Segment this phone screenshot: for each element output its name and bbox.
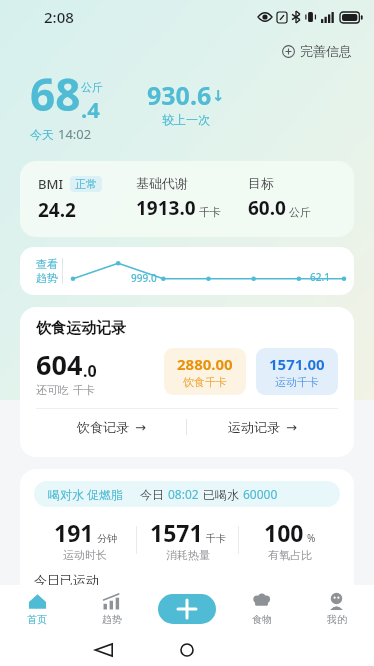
- staticText: 999.0: [131, 271, 157, 285]
- staticText: 千卡: [73, 383, 95, 397]
- staticText: 跑步上楼: [110, 618, 150, 631]
- button[interactable]: 背包步行: [34, 595, 92, 637]
- button[interactable]: 1571.00: [256, 348, 338, 395]
- staticText: 运动记录: [228, 419, 280, 435]
- staticText: 14:02: [58, 125, 92, 143]
- staticText: .4: [81, 94, 100, 124]
- staticText: 191: [54, 517, 94, 548]
- staticText: →: [286, 420, 297, 435]
- button[interactable]: 首页: [0, 585, 74, 633]
- staticText: 开始运动: [215, 607, 275, 626]
- staticText: 今日已运动: [34, 572, 99, 588]
- staticText: 趋势: [36, 271, 58, 285]
- staticText: 基础代谢: [136, 175, 188, 191]
- staticText: 千卡: [199, 205, 221, 219]
- button[interactable]: 查看: [20, 247, 354, 295]
- staticText: ↓: [212, 87, 225, 104]
- staticText: 60.0: [248, 195, 286, 221]
- staticText: %: [307, 531, 316, 545]
- staticText: 24.2: [38, 197, 76, 223]
- staticText: 有氧占比: [268, 548, 312, 562]
- staticText: 今天: [30, 127, 54, 142]
- button[interactable]: 喝对水 促燃脂: [34, 481, 340, 507]
- staticText: 正常: [75, 177, 97, 191]
- button[interactable]: Add record: [158, 594, 216, 624]
- staticText: 604: [36, 346, 83, 383]
- staticText: 运动时长: [63, 548, 107, 562]
- staticText: 喝对水 促燃脂: [48, 486, 124, 502]
- button[interactable]: 食物: [224, 585, 299, 633]
- staticText: 还可吃: [36, 383, 69, 397]
- staticText: 1571: [150, 517, 203, 548]
- staticText: 饮食千卡: [183, 375, 227, 389]
- staticText: 08:02: [168, 486, 199, 502]
- staticText: 饮食记录: [77, 419, 129, 435]
- staticText: 查看: [36, 257, 58, 271]
- button[interactable]: 运动记录: [187, 409, 338, 445]
- staticText: 930.6: [147, 78, 212, 112]
- staticText: 100: [264, 517, 304, 548]
- staticText: 消耗热量: [166, 548, 210, 562]
- staticText: 较上一次: [162, 112, 210, 127]
- staticText: 食物: [252, 613, 272, 626]
- staticText: 分钟: [97, 532, 117, 545]
- staticText: 运动千卡: [275, 375, 319, 389]
- staticText: 饮食运动记录: [36, 319, 126, 338]
- staticText: 趋势: [102, 613, 122, 626]
- button[interactable]: 趋势: [74, 585, 149, 633]
- button[interactable]: 饮食记录: [36, 409, 186, 445]
- button[interactable]: 我的: [299, 585, 374, 633]
- staticText: 今日: [140, 487, 164, 502]
- staticText: 我的: [327, 613, 347, 626]
- staticText: 2:08: [44, 7, 74, 27]
- staticText: 62.1: [310, 270, 330, 284]
- staticText: 2880.00: [177, 354, 233, 374]
- staticText: 公斤: [289, 205, 311, 219]
- staticText: 1913.0: [136, 195, 196, 221]
- button[interactable]: BMI: [20, 161, 354, 237]
- staticText: .0: [83, 360, 97, 382]
- staticText: →: [135, 420, 146, 435]
- button[interactable]: 完善信息: [278, 40, 356, 62]
- button[interactable]: 2880.00: [164, 348, 246, 395]
- staticText: 首页: [27, 613, 47, 626]
- button[interactable]: 开始运动: [169, 595, 340, 637]
- staticText: 60000: [243, 486, 278, 502]
- staticText: 目标: [248, 175, 274, 191]
- staticText: 千卡: [206, 532, 226, 545]
- button[interactable]: 跑步上楼: [101, 595, 159, 637]
- staticText: 公斤: [81, 80, 103, 94]
- staticText: 已喝水: [203, 487, 239, 502]
- staticText: 背包步行: [43, 618, 83, 631]
- staticText: 1571.00: [269, 354, 325, 374]
- staticText: BMI: [38, 175, 64, 193]
- staticText: 完善信息: [300, 43, 352, 59]
- staticText: 68: [30, 64, 81, 124]
